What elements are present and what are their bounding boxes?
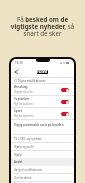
staticText: TV2 NYT bbox=[37, 70, 48, 74]
button[interactable]: Tilpas notifikationer bbox=[11, 78, 74, 83]
button[interactable]: Vigtig automatisk notis på forsiden bbox=[11, 120, 74, 134]
button[interactable]: Breaking bbox=[11, 84, 74, 95]
staticText: TV 2 SPIL og nyheder bbox=[14, 137, 42, 141]
staticText: 18.30 bbox=[15, 61, 23, 65]
staticText: Tilpas notifikationer bbox=[18, 79, 46, 83]
staticText: Hjælp og profil bbox=[14, 145, 34, 149]
staticText: Vigtige nyheder bbox=[14, 90, 34, 94]
staticText: Breaking bbox=[14, 85, 28, 89]
staticText: Sport bbox=[14, 109, 23, 113]
button[interactable]: Hjælp og profil bbox=[11, 143, 74, 150]
button[interactable]: Back bbox=[13, 68, 20, 75]
staticText: Nyt fra kulturen bbox=[14, 102, 34, 106]
button[interactable]: TV 2 SPIL og nyheder bbox=[11, 135, 74, 142]
staticText: Toptanker bbox=[14, 97, 30, 101]
staticText: Om anonymitet bbox=[14, 182, 35, 183]
staticText: Andet bbox=[14, 160, 23, 164]
button[interactable]: Om anonymitet bbox=[11, 182, 74, 183]
staticText: Vigtig automatisk notis på forsiden bbox=[14, 123, 64, 127]
button[interactable]: Hjælp bbox=[11, 151, 74, 158]
button[interactable]: Vælg til notifikationer bbox=[11, 166, 74, 173]
button[interactable]: Toptanker bbox=[11, 96, 74, 107]
staticText: Få besked om de vigtigste nyheder, så sn… bbox=[6, 15, 79, 37]
staticText: Vælg til notifikationer bbox=[14, 168, 43, 172]
staticText: Om feedback bbox=[14, 176, 32, 180]
staticText: Nyt fra sportens bbox=[14, 114, 34, 118]
button[interactable]: Sport bbox=[11, 108, 74, 119]
staticText: Hjælp bbox=[14, 153, 22, 157]
button[interactable]: Om feedback bbox=[11, 174, 74, 181]
